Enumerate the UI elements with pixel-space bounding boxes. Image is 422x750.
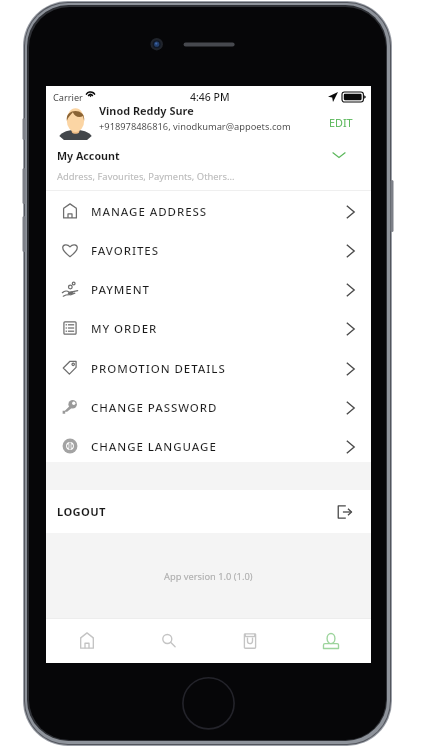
button[interactable]: EDIT [318,111,364,133]
staticText: FAVORITES [91,243,159,259]
staticText: CHANGE PASSWORD [91,400,218,416]
button[interactable]: PROMOTION DETAILS [46,349,371,388]
button[interactable]: MY ORDER [46,309,371,348]
button[interactable]: LOGOUT [46,490,371,533]
staticText: App version 1.0 (1.0) [164,570,253,583]
staticText: My Account [57,149,120,164]
button[interactable]: Profile [290,618,371,663]
button[interactable]: CHANGE PASSWORD [46,388,371,427]
staticText: PROMOTION DETAILS [91,361,226,377]
button[interactable]: Orders [209,618,290,663]
staticText: CHANGE LANGUAGE [91,439,217,455]
staticText: LOGOUT [57,504,106,519]
staticText: MY ORDER [91,321,158,337]
staticText: EDIT [329,115,353,130]
button[interactable]: CHANGE LANGUAGE [46,427,371,466]
other: Logout [335,503,353,521]
button[interactable]: PAYMENT [46,270,371,309]
button[interactable]: Home [46,618,128,663]
staticText: +918978486816, vinodkumar@appoets.com [99,120,291,133]
button[interactable]: MANAGE ADDRESS [46,192,371,231]
button[interactable]: Search [128,618,209,663]
staticText: 4:46 PM [190,90,230,104]
button[interactable]: My Account [46,144,371,184]
staticText: Carrier [53,91,83,104]
staticText: Vinod Reddy Sure [99,103,194,118]
staticText: PAYMENT [91,282,150,298]
staticText: MANAGE ADDRESS [91,204,208,220]
staticText: Address, Favourites, Payments, Others... [57,170,235,183]
button[interactable]: FAVORITES [46,231,371,270]
